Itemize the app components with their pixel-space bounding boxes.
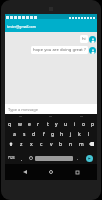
button[interactable]: b xyxy=(56,139,66,149)
staticText: o xyxy=(82,121,86,128)
staticText: , xyxy=(21,156,23,161)
button[interactable]: i xyxy=(70,119,79,129)
button[interactable]: Contact avatar xyxy=(89,47,96,54)
button[interactable]: m xyxy=(76,139,86,149)
button[interactable]: Home xyxy=(45,166,57,178)
staticText: s xyxy=(23,131,26,138)
staticText: x xyxy=(30,141,33,148)
button[interactable]: . xyxy=(73,153,82,163)
staticText: r xyxy=(37,121,40,128)
staticText: p xyxy=(91,121,95,128)
button[interactable]: f xyxy=(39,129,48,139)
button[interactable]: Space xyxy=(35,156,73,161)
staticText: t xyxy=(47,121,49,128)
staticText: l xyxy=(88,131,90,138)
button[interactable]: hi xyxy=(82,36,86,42)
button[interactable]: s xyxy=(19,129,29,139)
button[interactable]: a xyxy=(9,129,19,139)
staticText: m xyxy=(79,141,84,148)
button[interactable]: Suggestion xyxy=(5,114,35,119)
staticText: Type a message xyxy=(8,107,39,112)
button[interactable]: Shift xyxy=(5,139,16,149)
button[interactable]: Emoji xyxy=(26,153,35,163)
button[interactable]: o xyxy=(79,119,88,129)
button[interactable]: z xyxy=(16,139,26,149)
button[interactable]: k xyxy=(75,129,84,139)
button[interactable]: e xyxy=(25,119,34,129)
staticText: tester@gmail.com xyxy=(7,24,37,29)
button[interactable]: t xyxy=(43,119,52,129)
button[interactable]: h xyxy=(57,129,66,139)
button[interactable]: y xyxy=(52,119,61,129)
staticText: c xyxy=(40,141,43,148)
staticText: j xyxy=(70,131,72,138)
button[interactable]: q xyxy=(5,119,15,129)
button[interactable]: Type a message xyxy=(5,104,97,114)
button[interactable]: c xyxy=(36,139,46,149)
button[interactable]: Suggestion xyxy=(66,114,97,119)
staticText: k xyxy=(78,131,81,138)
staticText: a xyxy=(13,131,16,138)
button[interactable]: u xyxy=(61,119,70,129)
button[interactable]: ?123 xyxy=(5,153,18,163)
staticText: n xyxy=(69,141,73,148)
button[interactable]: Back xyxy=(19,166,31,178)
staticText: e xyxy=(28,121,31,128)
button[interactable]: hope you are doing great ? xyxy=(33,47,86,53)
button[interactable]: Send xyxy=(82,153,97,163)
staticText: z xyxy=(20,141,23,148)
staticText: . xyxy=(77,156,79,161)
staticText: y xyxy=(55,121,58,128)
button[interactable]: d xyxy=(29,129,39,139)
button[interactable]: l xyxy=(84,129,93,139)
button[interactable]: Suggestion xyxy=(35,114,66,119)
staticText: v xyxy=(50,141,53,148)
staticText: f xyxy=(43,131,45,138)
button[interactable]: tester@gmail.com xyxy=(5,19,97,32)
button[interactable]: r xyxy=(34,119,43,129)
staticText: hope you are doing great ? xyxy=(33,47,86,53)
staticText: q xyxy=(8,121,12,128)
button[interactable]: w xyxy=(15,119,25,129)
button[interactable]: x xyxy=(26,139,36,149)
button[interactable]: Delete xyxy=(86,139,97,149)
button[interactable]: p xyxy=(88,119,97,129)
staticText: d xyxy=(32,131,36,138)
button[interactable]: Recent apps xyxy=(71,166,83,178)
staticText: ?123 xyxy=(8,156,15,160)
button[interactable]: , xyxy=(18,153,26,163)
button[interactable]: Contact avatar xyxy=(89,36,96,43)
staticText: b xyxy=(59,141,63,148)
staticText: w xyxy=(18,121,22,128)
button[interactable]: n xyxy=(66,139,76,149)
staticText: u xyxy=(64,121,68,128)
staticText: h xyxy=(60,131,64,138)
staticText: i xyxy=(74,121,76,128)
button[interactable]: v xyxy=(46,139,56,149)
staticText: g xyxy=(51,131,55,138)
button[interactable]: j xyxy=(66,129,75,139)
button[interactable]: g xyxy=(48,129,57,139)
staticText: hi xyxy=(82,36,86,42)
